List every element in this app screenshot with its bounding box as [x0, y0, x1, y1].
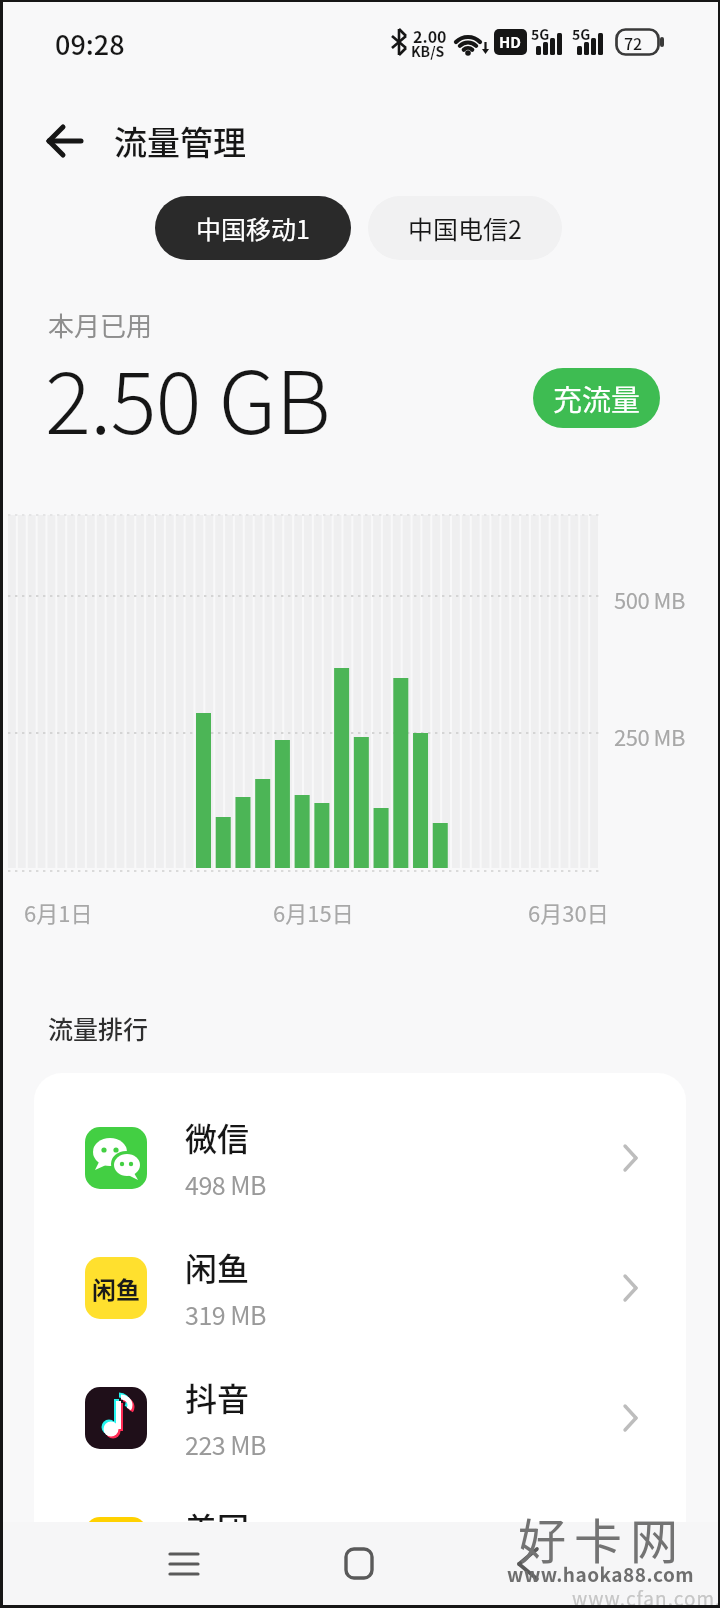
staticText: HD — [499, 31, 522, 53]
staticText: www.cfan.com.cn — [572, 1584, 720, 1608]
staticText: 09:28 — [55, 24, 125, 63]
staticText: 6月15日 — [273, 896, 354, 928]
button[interactable]: 抖音 — [34, 1355, 686, 1480]
button[interactable]: 中国电信2 — [368, 196, 562, 260]
staticText: 本月已用 — [48, 306, 153, 344]
button[interactable] — [344, 1547, 374, 1580]
staticText: 6月30日 — [528, 896, 609, 928]
staticText: 充流量 — [553, 377, 641, 419]
staticText: 闲鱼 — [92, 1271, 140, 1306]
button[interactable] — [166, 1548, 202, 1580]
staticText: 2.00 — [413, 24, 447, 47]
staticText: 中国移动1 — [196, 210, 310, 246]
staticText: 5G — [531, 24, 550, 44]
staticText: 流量排行 — [48, 1010, 149, 1046]
button[interactable]: 中国移动1 — [155, 196, 351, 260]
button[interactable] — [512, 1546, 542, 1582]
staticText: 闲鱼 — [185, 1244, 250, 1290]
button[interactable]: 美团 — [34, 1485, 686, 1593]
button[interactable] — [46, 122, 84, 160]
staticText: 好卡网 — [518, 1503, 687, 1573]
button[interactable]: 微信 — [34, 1095, 686, 1220]
staticText: 2.50 GB — [45, 334, 330, 459]
staticText: 498 MB — [185, 1166, 266, 1202]
staticText: 微信 — [185, 1114, 250, 1160]
staticText: 180 MB — [185, 1556, 266, 1592]
staticText: 流量管理 — [114, 117, 246, 165]
staticText: 72 — [624, 31, 643, 54]
staticText: 250 MB — [614, 720, 685, 752]
staticText: KB/S — [411, 41, 445, 61]
staticText: 319 MB — [185, 1296, 266, 1332]
staticText: 6月1日 — [24, 896, 93, 928]
button[interactable]: 闲鱼 — [34, 1225, 686, 1350]
staticText: 223 MB — [185, 1426, 266, 1462]
staticText: www.haoka88.com — [507, 1560, 695, 1588]
staticText: 抖音 — [185, 1374, 250, 1420]
button[interactable]: 充流量 — [533, 368, 660, 428]
staticText: 美团 — [185, 1504, 250, 1550]
staticText: 中国电信2 — [408, 210, 522, 246]
staticText: 500 MB — [614, 583, 685, 615]
staticText: 5G — [572, 24, 591, 44]
